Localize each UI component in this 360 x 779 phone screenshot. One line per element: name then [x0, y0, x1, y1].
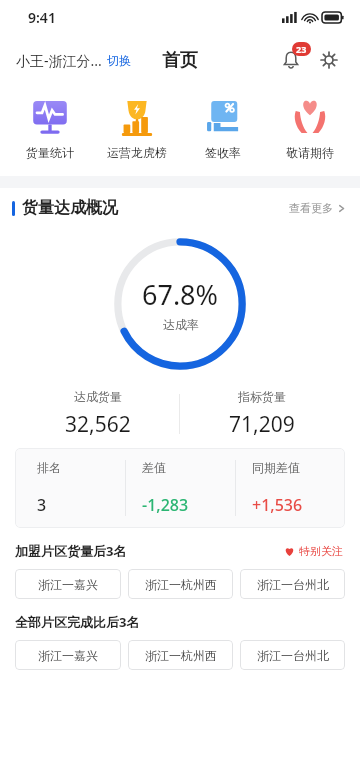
staticText: 71,209	[229, 410, 295, 439]
button[interactable]: 浙江一嘉兴	[15, 640, 121, 670]
staticText: 浙江一杭州西	[145, 648, 217, 663]
staticText: 小王-浙江分...	[16, 51, 102, 70]
staticText: 全部片区完成比后3名	[15, 613, 140, 631]
staticText: 浙江一台州北	[257, 577, 329, 592]
staticText: 切换	[107, 53, 131, 68]
staticText: 浙江一杭州西	[145, 577, 217, 592]
staticText: 加盟片区货量后3名	[15, 542, 127, 560]
button[interactable]: 特别关注	[282, 542, 345, 560]
button[interactable]: 查看更多	[287, 197, 348, 219]
button[interactable]: Settings	[312, 43, 346, 77]
button[interactable]: 运营龙虎榜	[100, 92, 174, 164]
staticText: 敬请期待	[286, 145, 334, 160]
button[interactable]: 小王-浙江分...	[16, 51, 131, 70]
button[interactable]: Notifications	[274, 43, 308, 77]
staticText: 3	[37, 494, 47, 516]
button[interactable]: 浙江一杭州西	[128, 640, 233, 670]
staticText: 同期差值	[252, 460, 300, 475]
button[interactable]: 浙江一台州北	[240, 640, 345, 670]
staticText: 32,562	[65, 410, 131, 439]
staticText: 指标货量	[238, 389, 286, 404]
button[interactable]: 签收率	[186, 92, 260, 164]
staticText: 排名	[37, 460, 61, 475]
button[interactable]: 浙江一嘉兴	[15, 569, 121, 599]
button[interactable]: 浙江一台州北	[240, 569, 345, 599]
staticText: 运营龙虎榜	[107, 145, 167, 160]
staticText: 首页	[162, 49, 198, 72]
staticText: 浙江一嘉兴	[38, 648, 98, 663]
staticText: 浙江一台州北	[257, 648, 329, 663]
staticText: 货量达成概况	[22, 198, 118, 218]
staticText: 差值	[142, 460, 166, 475]
button[interactable]: 货量统计	[13, 92, 87, 164]
staticText: -1,283	[142, 494, 189, 516]
staticText: 67.8%	[142, 276, 219, 313]
button[interactable]: 浙江一杭州西	[128, 569, 233, 599]
staticText: 达成货量	[74, 389, 122, 404]
staticText: 浙江一嘉兴	[38, 577, 98, 592]
staticText: 23	[296, 43, 307, 55]
staticText: 9:41	[28, 8, 56, 27]
staticText: 特别关注	[299, 544, 343, 558]
staticText: 达成率	[163, 317, 199, 332]
staticText: 查看更多	[289, 201, 333, 215]
staticText: 货量统计	[26, 145, 74, 160]
staticText: 签收率	[205, 145, 241, 160]
button[interactable]: 敬请期待	[273, 92, 347, 164]
staticText: +1,536	[252, 494, 303, 516]
